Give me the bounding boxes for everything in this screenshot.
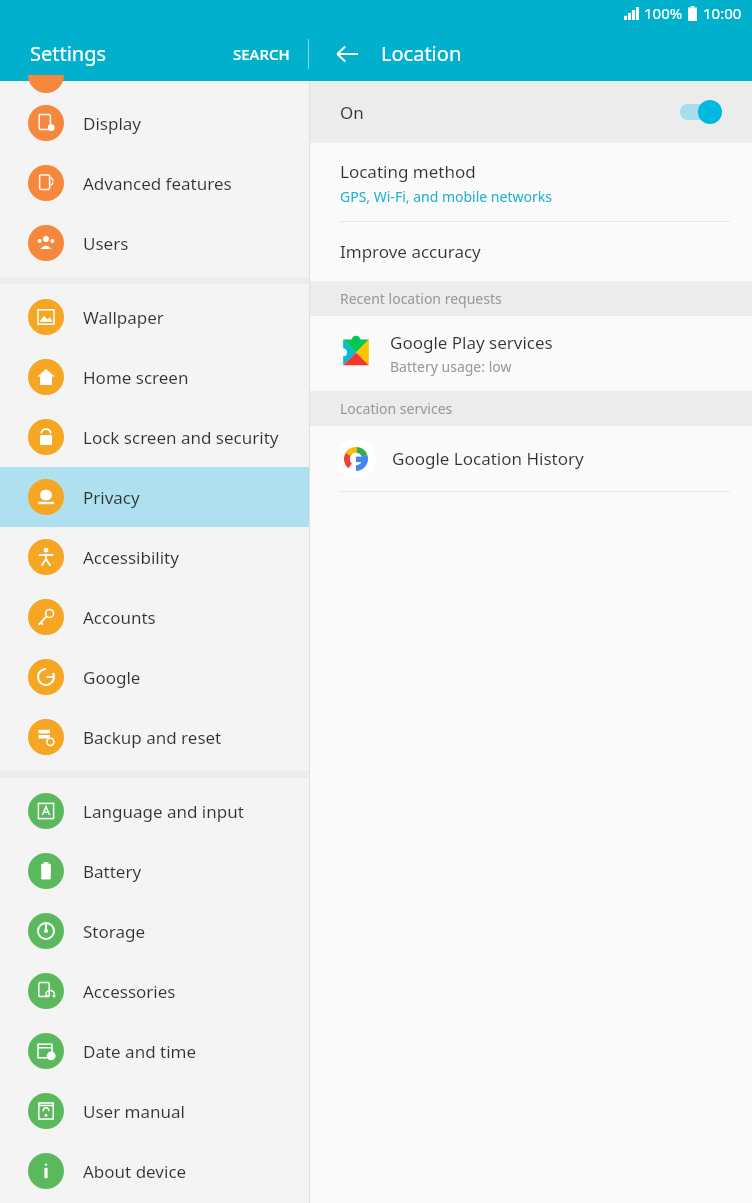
button[interactable]: Language and input	[0, 781, 309, 841]
button[interactable]: Locating method	[310, 143, 752, 221]
button[interactable]: Lock screen and security	[0, 407, 309, 467]
staticText: Date and time	[83, 1040, 197, 1063]
staticText: 100%	[644, 3, 683, 23]
button[interactable]: Advanced features	[0, 153, 309, 213]
staticText: On	[340, 101, 364, 124]
staticText: Accessibility	[83, 546, 179, 569]
staticText: About device	[83, 1160, 187, 1183]
staticText: SEARCH	[233, 44, 290, 64]
button[interactable]: SEARCH	[223, 36, 300, 72]
staticText: Lock screen and security	[83, 426, 279, 449]
button[interactable]: Wallpaper	[0, 287, 309, 347]
staticText: Settings	[30, 40, 107, 67]
button[interactable]: Google	[0, 647, 309, 707]
button[interactable]: Display	[0, 93, 309, 153]
button[interactable]: Users	[0, 213, 309, 273]
staticText: Accessories	[83, 980, 176, 1003]
staticText: Accounts	[83, 606, 156, 629]
staticText: Backup and reset	[83, 726, 222, 749]
button[interactable]: On	[310, 81, 752, 143]
button[interactable]: Privacy	[0, 467, 309, 527]
button[interactable]: Date and time	[0, 1021, 309, 1081]
staticText: Google	[83, 666, 141, 689]
staticText: Locating method	[340, 160, 476, 183]
staticText: Display	[83, 112, 141, 135]
staticText: Google Location History	[392, 447, 584, 470]
button[interactable]: About device	[0, 1141, 309, 1201]
staticText: User manual	[83, 1100, 185, 1123]
button[interactable]: Accounts	[0, 587, 309, 647]
staticText: Advanced features	[83, 172, 232, 195]
staticText: Location	[381, 40, 462, 67]
staticText: Battery usage: low	[390, 357, 512, 376]
button[interactable]: Home screen	[0, 347, 309, 407]
button[interactable]: User manual	[0, 1081, 309, 1141]
button[interactable]: Battery	[0, 841, 309, 901]
staticText: Home screen	[83, 366, 189, 389]
button[interactable]: Storage	[0, 901, 309, 961]
button[interactable]: Accessories	[0, 961, 309, 1021]
staticText: 10:00	[703, 3, 742, 23]
button[interactable]: Back	[325, 32, 369, 76]
staticText: Language and input	[83, 800, 244, 823]
staticText: Wallpaper	[83, 306, 164, 329]
button[interactable]: Google Play services	[310, 316, 752, 391]
staticText: Users	[83, 232, 129, 255]
staticText: Privacy	[83, 486, 140, 509]
button[interactable]: Google Location History	[310, 426, 752, 491]
staticText: Improve accuracy	[340, 240, 481, 263]
staticText: Google Play services	[390, 331, 553, 354]
button[interactable]: Improve accuracy	[310, 222, 752, 281]
button[interactable]: Accessibility	[0, 527, 309, 587]
staticText: Battery	[83, 860, 142, 883]
button[interactable]: Backup and reset	[0, 707, 309, 767]
staticText: Recent location requests	[340, 289, 502, 308]
staticText: Storage	[83, 920, 146, 943]
staticText: GPS, Wi-Fi, and mobile networks	[340, 187, 552, 206]
staticText: Location services	[340, 399, 453, 418]
